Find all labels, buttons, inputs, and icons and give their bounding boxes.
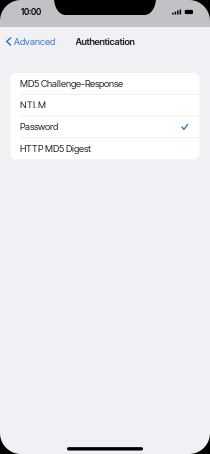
button[interactable]: Password — [10, 116, 199, 138]
staticText: Password — [20, 121, 58, 132]
staticText: HTTP MD5 Digest — [20, 143, 91, 154]
staticText: Advanced — [14, 36, 55, 47]
button[interactable]: MD5 Challenge-Response — [10, 73, 199, 95]
button[interactable]: NTLM — [10, 95, 199, 116]
staticText: Authentication — [75, 36, 134, 47]
button[interactable]: Advanced — [0, 32, 55, 47]
staticText: NTLM — [20, 99, 46, 111]
button[interactable]: HTTP MD5 Digest — [10, 138, 199, 159]
staticText: 10:00 — [21, 7, 41, 17]
staticText: MD5 Challenge-Response — [20, 78, 123, 89]
